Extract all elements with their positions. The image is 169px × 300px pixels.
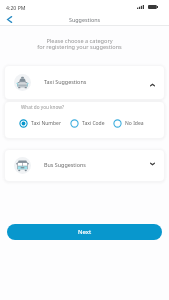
staticText: No Idea <box>125 120 144 127</box>
button[interactable]: Bus Suggestions <box>5 150 164 181</box>
button[interactable]: Back <box>0 13 18 26</box>
staticText: Suggestions <box>69 16 101 23</box>
staticText: Next <box>78 228 92 236</box>
staticText: Bus Suggestions <box>44 161 86 168</box>
button[interactable]: Taxi Number <box>19 119 61 128</box>
staticText: Taxi Number <box>31 120 61 127</box>
staticText: 4:20 PM <box>6 4 26 11</box>
button[interactable]: No Idea <box>113 119 144 128</box>
staticText: Taxi Code <box>82 120 105 127</box>
button[interactable]: Next <box>7 224 162 240</box>
staticText: Taxi Suggestions <box>44 78 87 85</box>
staticText: What do you know? <box>21 104 65 110</box>
button[interactable]: Taxi Suggestions <box>5 66 164 99</box>
button[interactable]: Taxi Code <box>70 119 105 128</box>
staticText: Please choose a category for registering… <box>0 37 159 50</box>
